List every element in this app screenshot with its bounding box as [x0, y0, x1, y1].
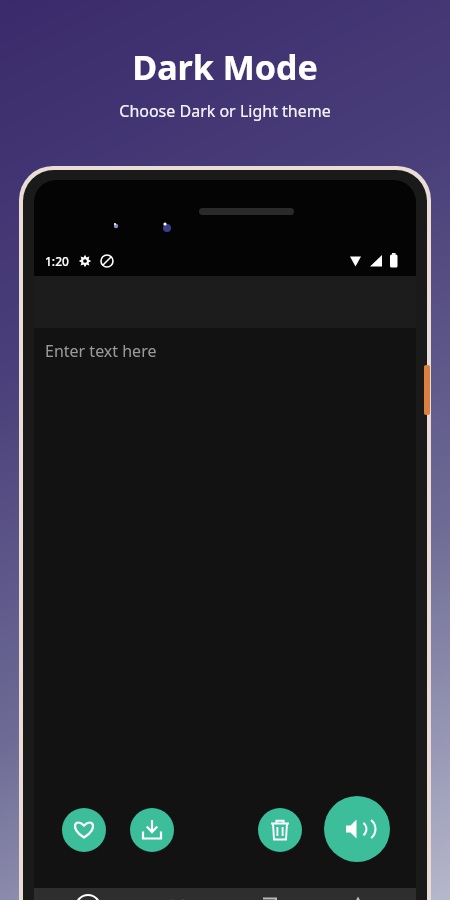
staticText: 1:20 [45, 253, 69, 269]
button[interactable]: Download [130, 808, 174, 852]
button[interactable]: Copies [244, 888, 292, 900]
button[interactable]: Speak [324, 796, 390, 862]
button[interactable]: Settings [334, 888, 382, 900]
staticText: Choose Dark or Light theme [119, 100, 331, 122]
button[interactable]: Favorite [62, 808, 106, 852]
staticText: Dark Mode [132, 44, 318, 90]
button[interactable]: Enter text here [45, 340, 157, 362]
button[interactable]: List [64, 888, 112, 900]
button[interactable]: Delete [258, 808, 302, 852]
